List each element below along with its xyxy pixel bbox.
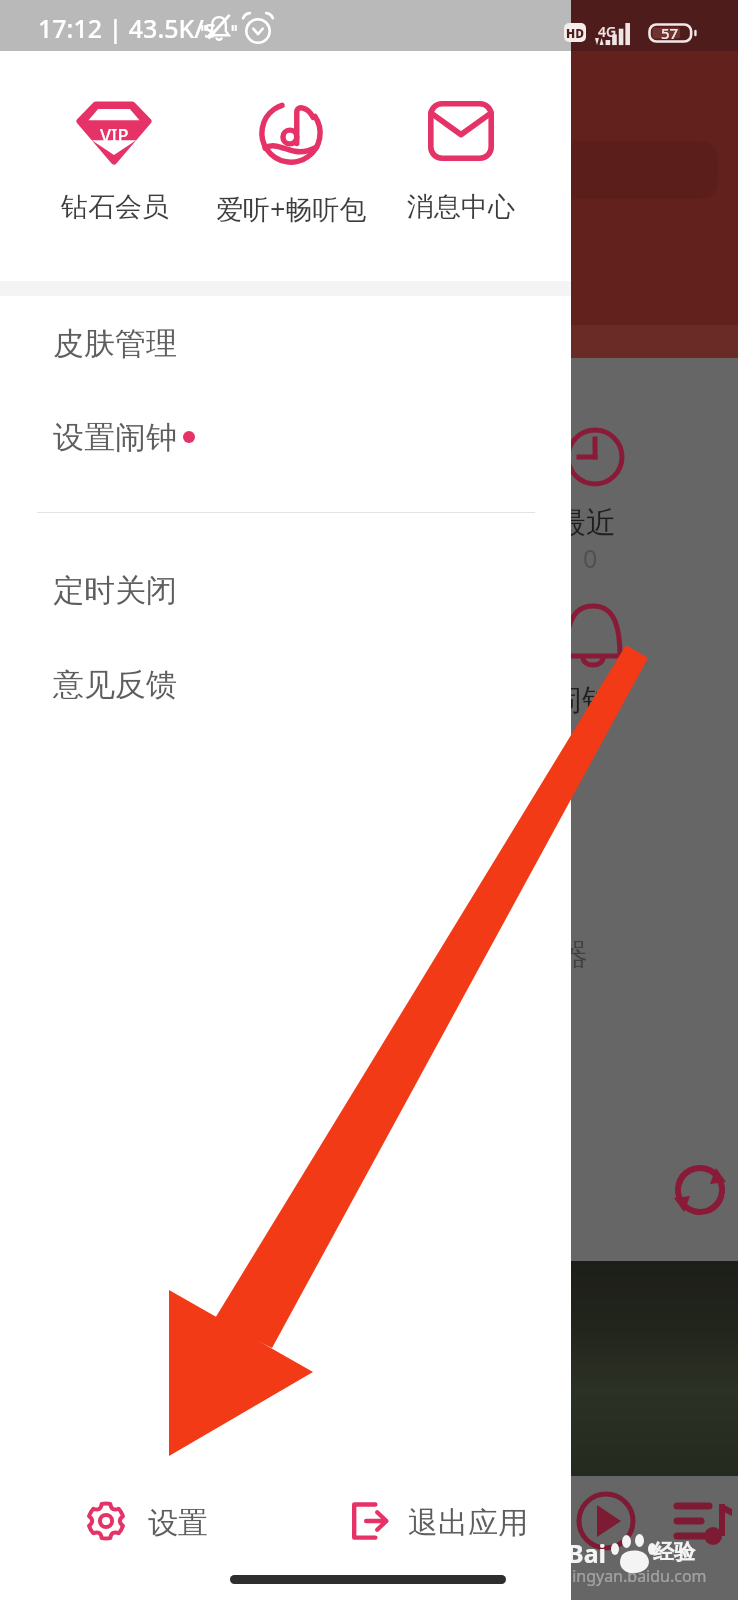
staticText: 钻石会员	[61, 190, 169, 224]
other: Exit app	[345, 1498, 391, 1544]
staticText: 经验	[653, 1539, 695, 1565]
staticText: 闹钟	[552, 681, 612, 719]
staticText: Bai	[567, 1536, 607, 1570]
staticText: 17:12 | 43.5K/s	[38, 11, 217, 45]
staticText: 器	[558, 936, 588, 974]
button[interactable]: 消息中心	[376, 85, 546, 240]
staticText: 消息中心	[407, 190, 515, 224]
staticText: 4G	[598, 22, 617, 41]
staticText: 设置	[148, 1504, 208, 1542]
button[interactable]: 意见反馈	[0, 637, 571, 731]
staticText: 设置闹钟	[53, 418, 177, 457]
staticText: 皮肤管理	[53, 324, 177, 363]
staticText: VIP	[100, 123, 129, 148]
button[interactable]: 皮肤管理	[0, 296, 571, 390]
staticText: 意见反馈	[53, 665, 177, 704]
staticText: HD	[566, 25, 585, 41]
button[interactable]: Exit app	[345, 1485, 417, 1557]
button[interactable]: 爱听+畅听包	[206, 85, 376, 240]
staticText: 定时关闭	[53, 571, 177, 610]
staticText: jingyan.baidu.com	[568, 1565, 707, 1587]
button[interactable]: Settings	[85, 1485, 157, 1557]
staticText: 退出应用	[408, 1504, 528, 1542]
button[interactable]: 定时关闭	[0, 543, 571, 637]
other: Settings	[85, 1500, 127, 1542]
button[interactable]: VIP	[29, 85, 199, 240]
staticText: 0	[583, 541, 598, 575]
staticText: 最近	[556, 504, 616, 542]
staticText: 爱听+畅听包	[216, 190, 367, 227]
button[interactable]: 设置闹钟	[0, 390, 571, 484]
staticText: 57	[661, 23, 679, 43]
